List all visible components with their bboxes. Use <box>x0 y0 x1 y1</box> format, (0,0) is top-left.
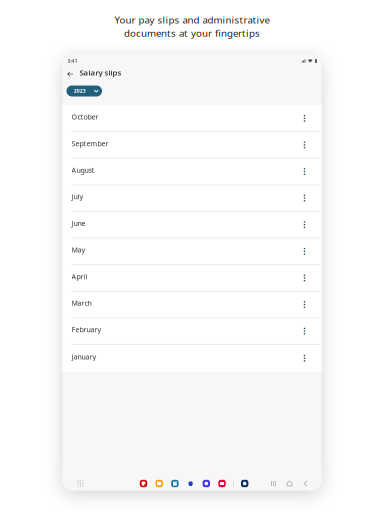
button[interactable]: 2023 <box>66 85 102 96</box>
button[interactable]: Home <box>284 478 294 488</box>
button[interactable]: Video <box>216 478 227 489</box>
button[interactable]: Recent apps <box>268 478 278 488</box>
button[interactable]: January <box>62 345 321 371</box>
staticText: Your pay slips and administrative <box>114 13 269 26</box>
staticText: May <box>71 245 85 255</box>
staticText: August <box>71 165 94 175</box>
staticText: September <box>71 139 108 148</box>
button[interactable]: Messages <box>185 478 196 489</box>
staticText: October <box>71 112 98 122</box>
button[interactable]: Calendar <box>169 478 180 489</box>
button[interactable]: Slides <box>138 478 149 489</box>
staticText: 2023 <box>74 87 86 94</box>
staticText: July <box>71 192 83 201</box>
staticText: documents at your fingertips <box>124 26 260 40</box>
button[interactable]: Camera <box>239 478 250 489</box>
staticText: March <box>71 298 91 308</box>
button[interactable]: Back <box>64 67 77 80</box>
button[interactable]: All apps <box>74 477 86 489</box>
button[interactable]: April <box>62 265 321 292</box>
staticText: January <box>71 352 96 361</box>
staticText: Salary slips <box>79 67 121 78</box>
button[interactable]: May <box>62 238 321 265</box>
button[interactable]: October <box>62 105 321 132</box>
button[interactable]: Salary slips <box>77 66 125 82</box>
staticText: June <box>71 218 85 228</box>
staticText: April <box>71 272 87 281</box>
staticText: 9:41 <box>67 57 77 65</box>
button[interactable]: June <box>62 212 321 238</box>
button[interactable]: July <box>62 185 321 212</box>
button[interactable]: March <box>62 292 321 318</box>
button[interactable]: February <box>62 318 321 345</box>
button[interactable]: September <box>62 132 321 159</box>
staticText: February <box>71 325 101 334</box>
button[interactable]: Files <box>154 478 165 489</box>
button[interactable]: Back <box>300 478 310 488</box>
button[interactable]: August <box>62 159 321 185</box>
button[interactable]: Meet <box>201 478 212 489</box>
